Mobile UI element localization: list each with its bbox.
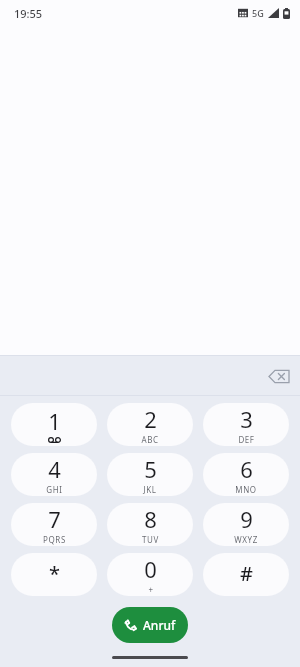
staticText: 1 bbox=[48, 406, 61, 436]
staticText: 4 bbox=[48, 454, 61, 484]
staticText: MNO bbox=[235, 484, 257, 495]
staticText: 2 bbox=[144, 404, 157, 434]
staticText: 9 bbox=[240, 504, 253, 534]
staticText: PQRS bbox=[43, 534, 66, 545]
button[interactable]: 9 bbox=[203, 503, 289, 546]
staticText: 7 bbox=[48, 504, 61, 534]
staticText: 5G bbox=[252, 7, 264, 19]
staticText: DEF bbox=[238, 434, 255, 445]
button[interactable]: Backspace bbox=[264, 361, 294, 391]
staticText: 5 bbox=[144, 454, 157, 484]
button[interactable]: Anruf bbox=[112, 607, 188, 643]
staticText: 6 bbox=[240, 454, 253, 484]
staticText: 19:55 bbox=[14, 6, 43, 21]
button[interactable]: 6 bbox=[203, 453, 289, 496]
staticText: WXYZ bbox=[234, 534, 258, 545]
button[interactable]: 1 bbox=[11, 403, 97, 446]
button[interactable]: # bbox=[203, 553, 289, 596]
staticText: TUV bbox=[142, 534, 159, 545]
button[interactable]: 8 bbox=[107, 503, 193, 546]
staticText: + bbox=[148, 584, 154, 595]
button[interactable]: 2 bbox=[107, 403, 193, 446]
button[interactable]: 4 bbox=[11, 453, 97, 496]
staticText: GHI bbox=[46, 484, 63, 495]
staticText: 0 bbox=[144, 554, 157, 584]
staticText: ABC bbox=[141, 434, 159, 445]
staticText: * bbox=[49, 560, 60, 587]
button[interactable]: 7 bbox=[11, 503, 97, 546]
button[interactable]: * bbox=[11, 553, 97, 596]
button[interactable]: 5 bbox=[107, 453, 193, 496]
staticText: JKL bbox=[143, 484, 157, 495]
button[interactable]: 0 bbox=[107, 553, 193, 596]
staticText: 8 bbox=[144, 504, 157, 534]
staticText: 3 bbox=[240, 404, 253, 434]
button[interactable]: 3 bbox=[203, 403, 289, 446]
staticText: # bbox=[240, 560, 253, 587]
staticText: Anruf bbox=[143, 617, 176, 633]
